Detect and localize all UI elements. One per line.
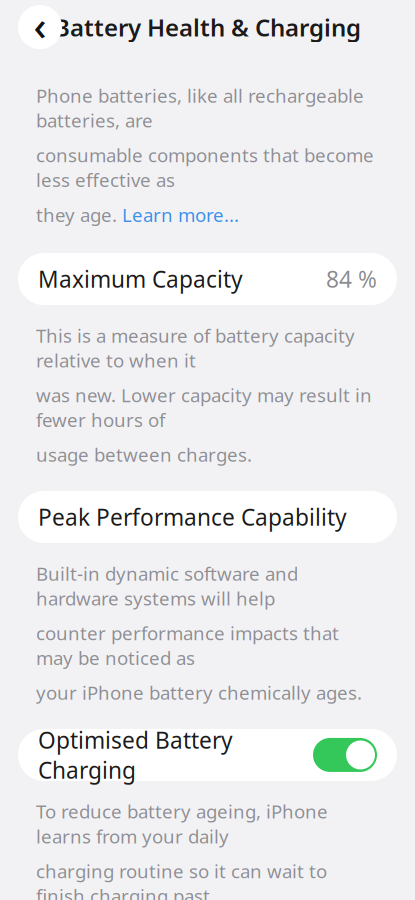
staticText: Peak Performance Capability xyxy=(38,502,347,532)
button[interactable]: Back xyxy=(18,5,62,49)
staticText: they age. xyxy=(36,202,117,227)
staticText: Built-in dynamic software and hardware s… xyxy=(36,561,298,611)
button[interactable]: Peak Performance Capability xyxy=(0,491,415,543)
staticText: your iPhone battery chemically ages. xyxy=(36,680,362,705)
staticText: 84 % xyxy=(326,264,377,294)
staticText: Optimised Battery Charging xyxy=(38,725,233,785)
staticText: Maximum Capacity xyxy=(38,264,243,294)
staticText: charging routine so it can wait to finis… xyxy=(36,858,327,900)
button[interactable]: Learn more... xyxy=(122,202,239,227)
staticText: consumable components that become less e… xyxy=(36,143,374,192)
staticText: Learn more... xyxy=(122,202,239,227)
staticText: To reduce battery ageing, iPhone learns … xyxy=(36,799,328,849)
button[interactable]: Optimised Battery Charging xyxy=(0,729,415,781)
staticText: counter performance impacts that may be … xyxy=(36,621,339,670)
staticText: was new. Lower capacity may result in fe… xyxy=(36,383,372,432)
staticText: Phone batteries, like all rechargeable b… xyxy=(36,83,364,133)
staticText: ‹ xyxy=(33,0,46,52)
staticText: This is a measure of battery capacity re… xyxy=(36,323,355,373)
staticText: usage between charges. xyxy=(36,442,252,467)
staticText: Battery Health & Charging xyxy=(54,11,361,43)
